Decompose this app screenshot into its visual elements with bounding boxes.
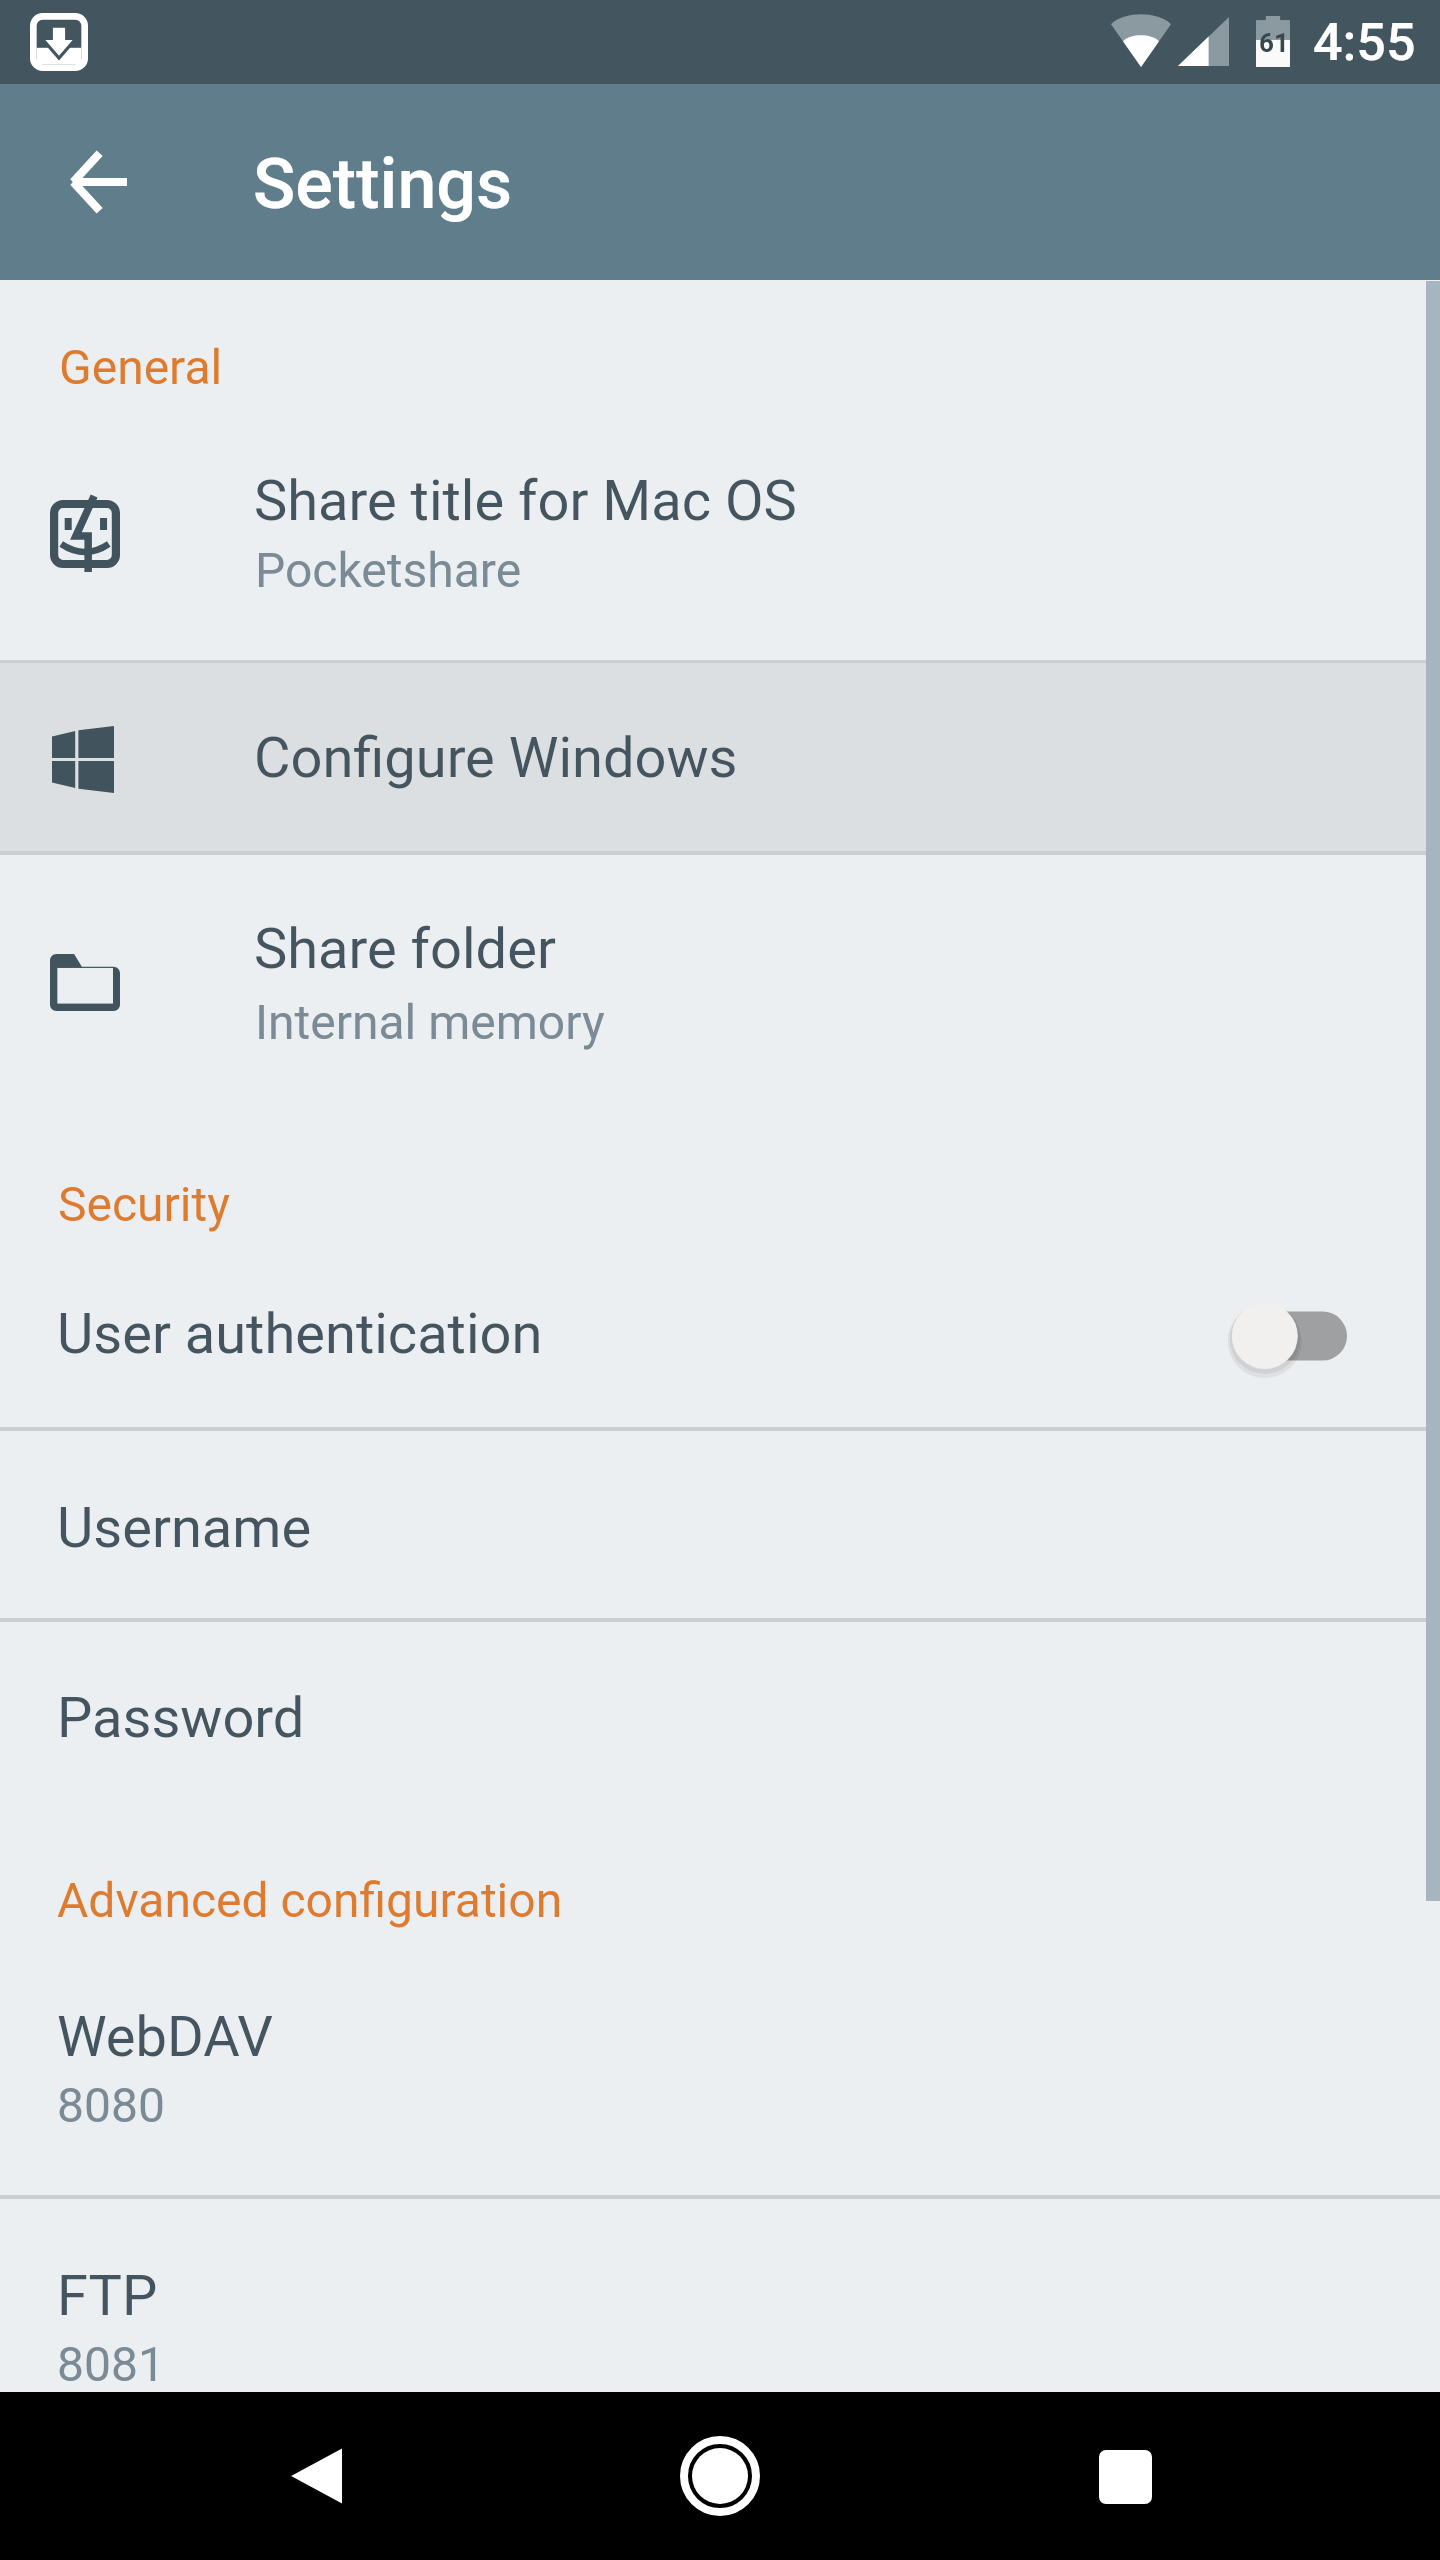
button[interactable]: User authentication bbox=[0, 1240, 1440, 1427]
staticText: 61 bbox=[1259, 28, 1289, 58]
staticText: WebDAV bbox=[57, 2004, 273, 2070]
button[interactable]: Password bbox=[0, 1621, 1440, 1810]
button[interactable]: Home bbox=[655, 2411, 785, 2541]
staticText: Pocketshare bbox=[255, 542, 522, 598]
staticText: Username bbox=[57, 1495, 312, 1561]
button[interactable]: Back bbox=[34, 118, 162, 246]
staticText: FTP bbox=[57, 2263, 158, 2329]
staticText: Security bbox=[58, 1176, 230, 1232]
staticText: 4:55 bbox=[1313, 12, 1416, 73]
button[interactable]: WebDAV bbox=[0, 1940, 1440, 2195]
button[interactable]: Recent apps bbox=[1060, 2412, 1190, 2542]
staticText: Advanced configuration bbox=[57, 1872, 563, 1928]
button[interactable]: Configure Windows bbox=[0, 663, 1440, 851]
button[interactable]: Back bbox=[250, 2411, 380, 2541]
staticText: Settings bbox=[253, 143, 513, 225]
staticText: 8080 bbox=[57, 2077, 165, 2133]
button[interactable]: Share folder bbox=[0, 855, 1440, 1117]
staticText: Share folder bbox=[254, 916, 556, 982]
staticText: Internal memory bbox=[255, 994, 605, 1050]
staticText: General bbox=[59, 339, 223, 395]
button[interactable]: Share title for Mac OS bbox=[0, 280, 1440, 660]
staticText: Configure Windows bbox=[254, 725, 738, 791]
staticText: 8081 bbox=[57, 2336, 165, 2392]
button[interactable]: Username bbox=[0, 1430, 1440, 1618]
staticText: User authentication bbox=[57, 1301, 543, 1367]
staticText: Share title for Mac OS bbox=[254, 468, 797, 534]
button[interactable]: FTP bbox=[0, 2198, 1440, 2392]
staticText: Password bbox=[57, 1685, 305, 1751]
